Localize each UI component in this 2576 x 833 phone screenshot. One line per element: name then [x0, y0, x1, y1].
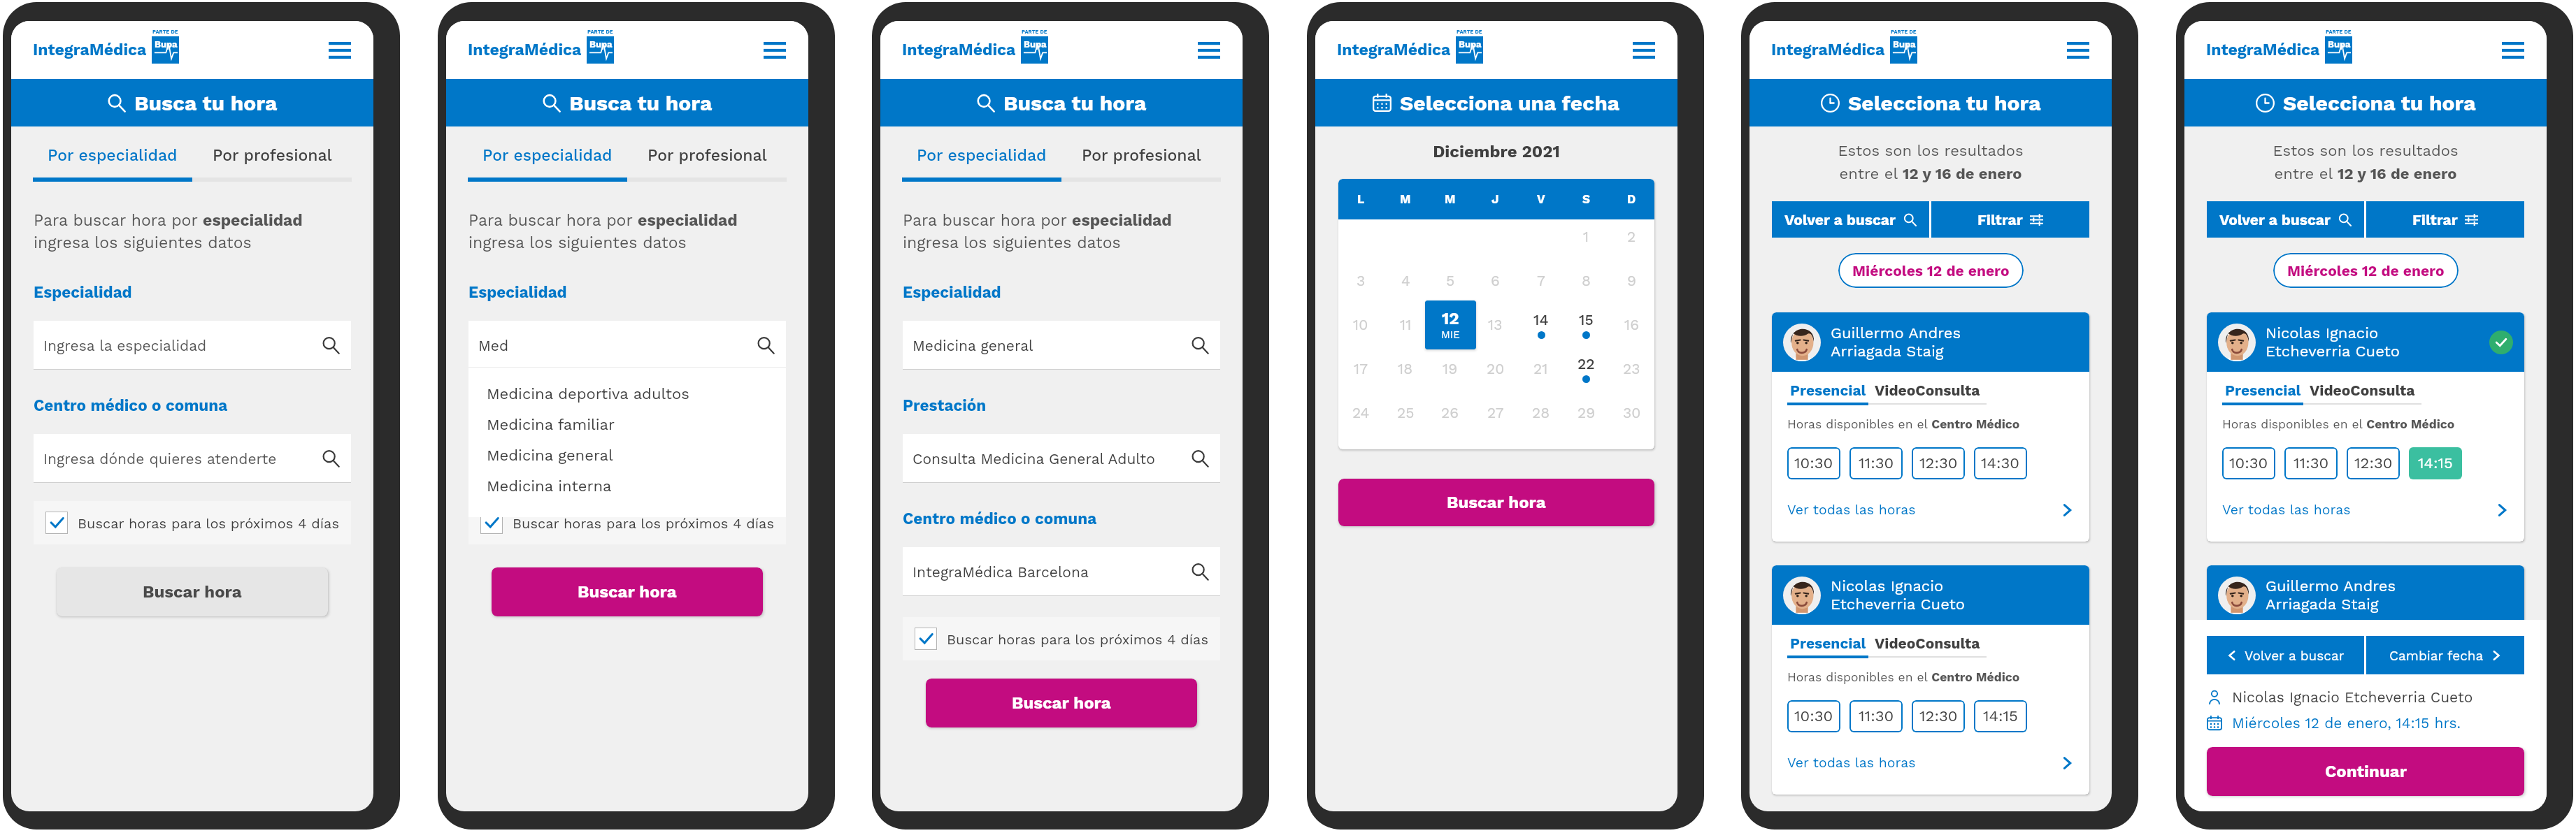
staticText: 26 [1441, 404, 1459, 421]
staticText: Nicolas Ignacio [1831, 577, 1944, 595]
staticText: 25 [1397, 404, 1415, 421]
staticText: PARTE DE [587, 29, 613, 35]
button[interactable]: Por profesional [1061, 145, 1221, 166]
button[interactable]: Ver todas las horas [1787, 755, 2074, 771]
button[interactable]: Presencial [1787, 382, 1868, 405]
button[interactable]: Medicina interna [487, 471, 786, 502]
button[interactable]: Miércoles 12 de enero [1838, 253, 2024, 288]
button[interactable]: Menu [1630, 36, 1658, 64]
staticText: 20 [1487, 360, 1505, 377]
button[interactable]: 12 [1425, 300, 1476, 349]
button[interactable]: Filtrar [1931, 201, 2089, 238]
staticText: 5 [1446, 272, 1455, 289]
button[interactable]: 12:30 [1912, 447, 1965, 479]
button[interactable]: 10:30 [2222, 700, 2275, 732]
button[interactable]: Med [468, 321, 786, 370]
staticText: Buscar hora [578, 582, 677, 602]
staticText: Miércoles 12 de enero [2287, 262, 2445, 280]
button[interactable]: Ver todas las horas [2222, 755, 2509, 771]
button[interactable]: 11:30 [1849, 700, 1903, 732]
button[interactable]: Continuar [2207, 747, 2524, 796]
button[interactable]: Menu [2064, 36, 2092, 64]
button[interactable]: 12:30 [2347, 447, 2400, 479]
staticText: Medicina general [487, 447, 613, 465]
staticText: Ingresa dónde quieres atenderte [478, 450, 712, 468]
button[interactable]: Filtrar [2366, 201, 2524, 238]
staticText: Bupa [2328, 39, 2351, 50]
button[interactable]: 12:30 [1912, 700, 1965, 732]
button[interactable]: Volver a buscar [2207, 201, 2364, 238]
button[interactable]: IntegraMédica Barcelona [903, 547, 1220, 596]
staticText: Volver a buscar [2245, 648, 2345, 663]
button[interactable]: Ingresa dónde quieres atenderte [34, 434, 351, 483]
button[interactable]: Por especialidad [902, 145, 1061, 166]
staticText: Medicina general [913, 337, 1033, 354]
staticText: Para buscar hora por especialidad ingres… [34, 211, 303, 252]
button[interactable]: Volver a buscar [1772, 201, 1929, 238]
staticText: Volver a buscar [2219, 211, 2331, 229]
button[interactable]: 12:30 [2347, 700, 2400, 732]
button[interactable]: Menu [326, 36, 354, 64]
button[interactable]: Consulta Medicina General Adulto [903, 434, 1220, 483]
button[interactable]: Buscar hora [926, 679, 1197, 727]
button[interactable]: 14:30 [1974, 447, 2027, 479]
button[interactable]: Buscar horas para los próximos 4 días [903, 617, 1220, 660]
button[interactable]: VideoConsulta [2303, 635, 2421, 658]
button[interactable]: Ingresa dónde quieres atenderte [468, 434, 786, 483]
button[interactable]: 11:30 [2284, 447, 2338, 479]
staticText: 10 [1353, 316, 1368, 333]
staticText: Presencial [1790, 382, 1866, 399]
staticText: Ver todas las horas [2222, 755, 2351, 771]
button[interactable]: Ver todas las horas [2222, 502, 2509, 518]
staticText: 11:30 [1859, 707, 1894, 725]
staticText: 2 [1627, 228, 1636, 245]
staticText: Etcheverria Cueto [1831, 595, 1965, 614]
staticText: IntegraMédica [1771, 41, 1885, 59]
button[interactable]: Presencial [2222, 382, 2303, 405]
button[interactable]: Por profesional [627, 145, 787, 166]
staticText: Selecciona una fecha [1400, 91, 1620, 115]
button[interactable]: Medicina general [903, 321, 1220, 370]
button[interactable]: Por profesional [192, 145, 352, 166]
button[interactable]: Medicina deportiva adultos [487, 379, 786, 410]
button[interactable]: Por especialidad [33, 145, 192, 166]
button[interactable]: Presencial [2222, 635, 2303, 658]
button[interactable]: VideoConsulta [1868, 382, 1987, 405]
button[interactable]: Volver a buscar [2207, 636, 2364, 674]
button[interactable]: 10:30 [1787, 447, 1840, 479]
button[interactable]: VideoConsulta [1868, 635, 1987, 658]
staticText: 3 [1357, 272, 1366, 289]
button[interactable]: Medicina general [487, 440, 786, 471]
button[interactable]: Buscar horas para los próximos 4 días [34, 501, 351, 544]
staticText: Ver todas las horas [1787, 755, 1916, 771]
button[interactable]: Ingresa la especialidad [34, 321, 351, 370]
button[interactable]: 14:15 [1974, 700, 2027, 732]
button[interactable]: Cambiar fecha [2366, 636, 2524, 674]
staticText: Por especialidad [48, 146, 178, 165]
staticText: Miércoles 12 de enero, 14:15 hrs. [2232, 714, 2461, 732]
button[interactable]: Ver todas las horas [1787, 502, 2074, 518]
staticText: Bupa [1024, 39, 1047, 50]
button[interactable]: VideoConsulta [2303, 382, 2421, 405]
button[interactable]: Medicina familiar [487, 410, 786, 440]
button[interactable]: Buscar hora [57, 567, 328, 616]
staticText: 14 [1533, 311, 1549, 328]
button[interactable]: Miércoles 12 de enero [2273, 253, 2459, 288]
button[interactable]: Buscar horas para los próximos 4 días [468, 501, 786, 544]
button[interactable]: 11:30 [1849, 447, 1903, 479]
staticText: Horas disponibles en el Centro Médico [2222, 417, 2455, 432]
button[interactable]: Por especialidad [468, 145, 627, 166]
button[interactable]: Presencial [1787, 635, 1868, 658]
button[interactable]: 10:30 [2222, 447, 2275, 479]
button[interactable]: Buscar hora [1338, 479, 1654, 526]
button[interactable]: 10:30 [1787, 700, 1840, 732]
button[interactable]: 14:30 [2409, 700, 2462, 732]
button[interactable]: Menu [761, 36, 789, 64]
button[interactable]: 14:15 [2409, 447, 2462, 479]
staticText: 10:30 [2229, 707, 2268, 725]
staticText: Prestación [903, 396, 987, 414]
button[interactable]: Menu [2499, 36, 2527, 64]
button[interactable]: 11:30 [2284, 700, 2338, 732]
button[interactable]: Menu [1195, 36, 1223, 64]
button[interactable]: Buscar hora [492, 567, 763, 616]
